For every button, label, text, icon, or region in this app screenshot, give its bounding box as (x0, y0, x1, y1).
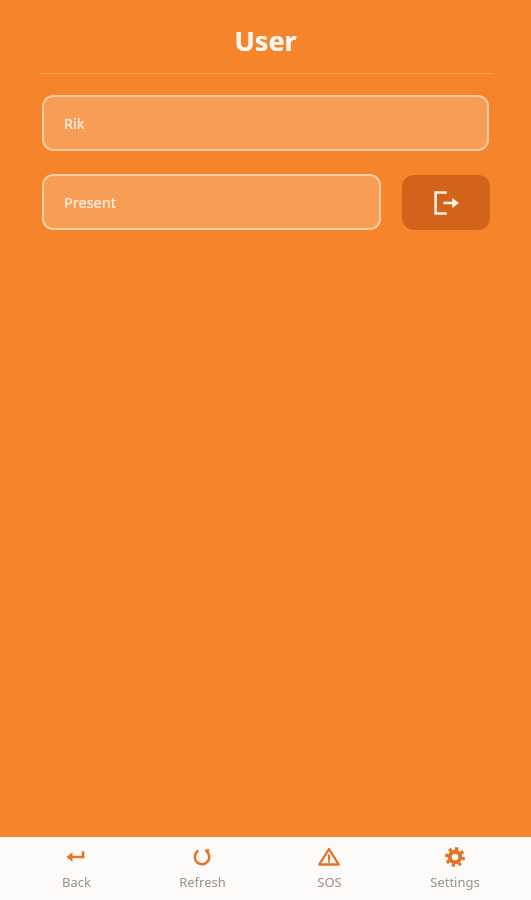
staticText: Rik (64, 113, 85, 133)
staticText: Settings (430, 873, 480, 891)
button[interactable]: Back (26, 842, 126, 895)
button[interactable]: Present (42, 174, 381, 230)
button[interactable]: SOS (279, 842, 379, 895)
button[interactable]: Rik (42, 95, 489, 151)
button[interactable]: Log out (402, 175, 490, 230)
staticText: Refresh (179, 873, 226, 891)
button[interactable]: Settings (405, 842, 505, 895)
staticText: SOS (317, 873, 342, 891)
button[interactable]: Refresh (152, 842, 252, 895)
staticText: Present (64, 192, 116, 212)
staticText: User (234, 22, 297, 59)
staticText: Back (62, 873, 91, 891)
